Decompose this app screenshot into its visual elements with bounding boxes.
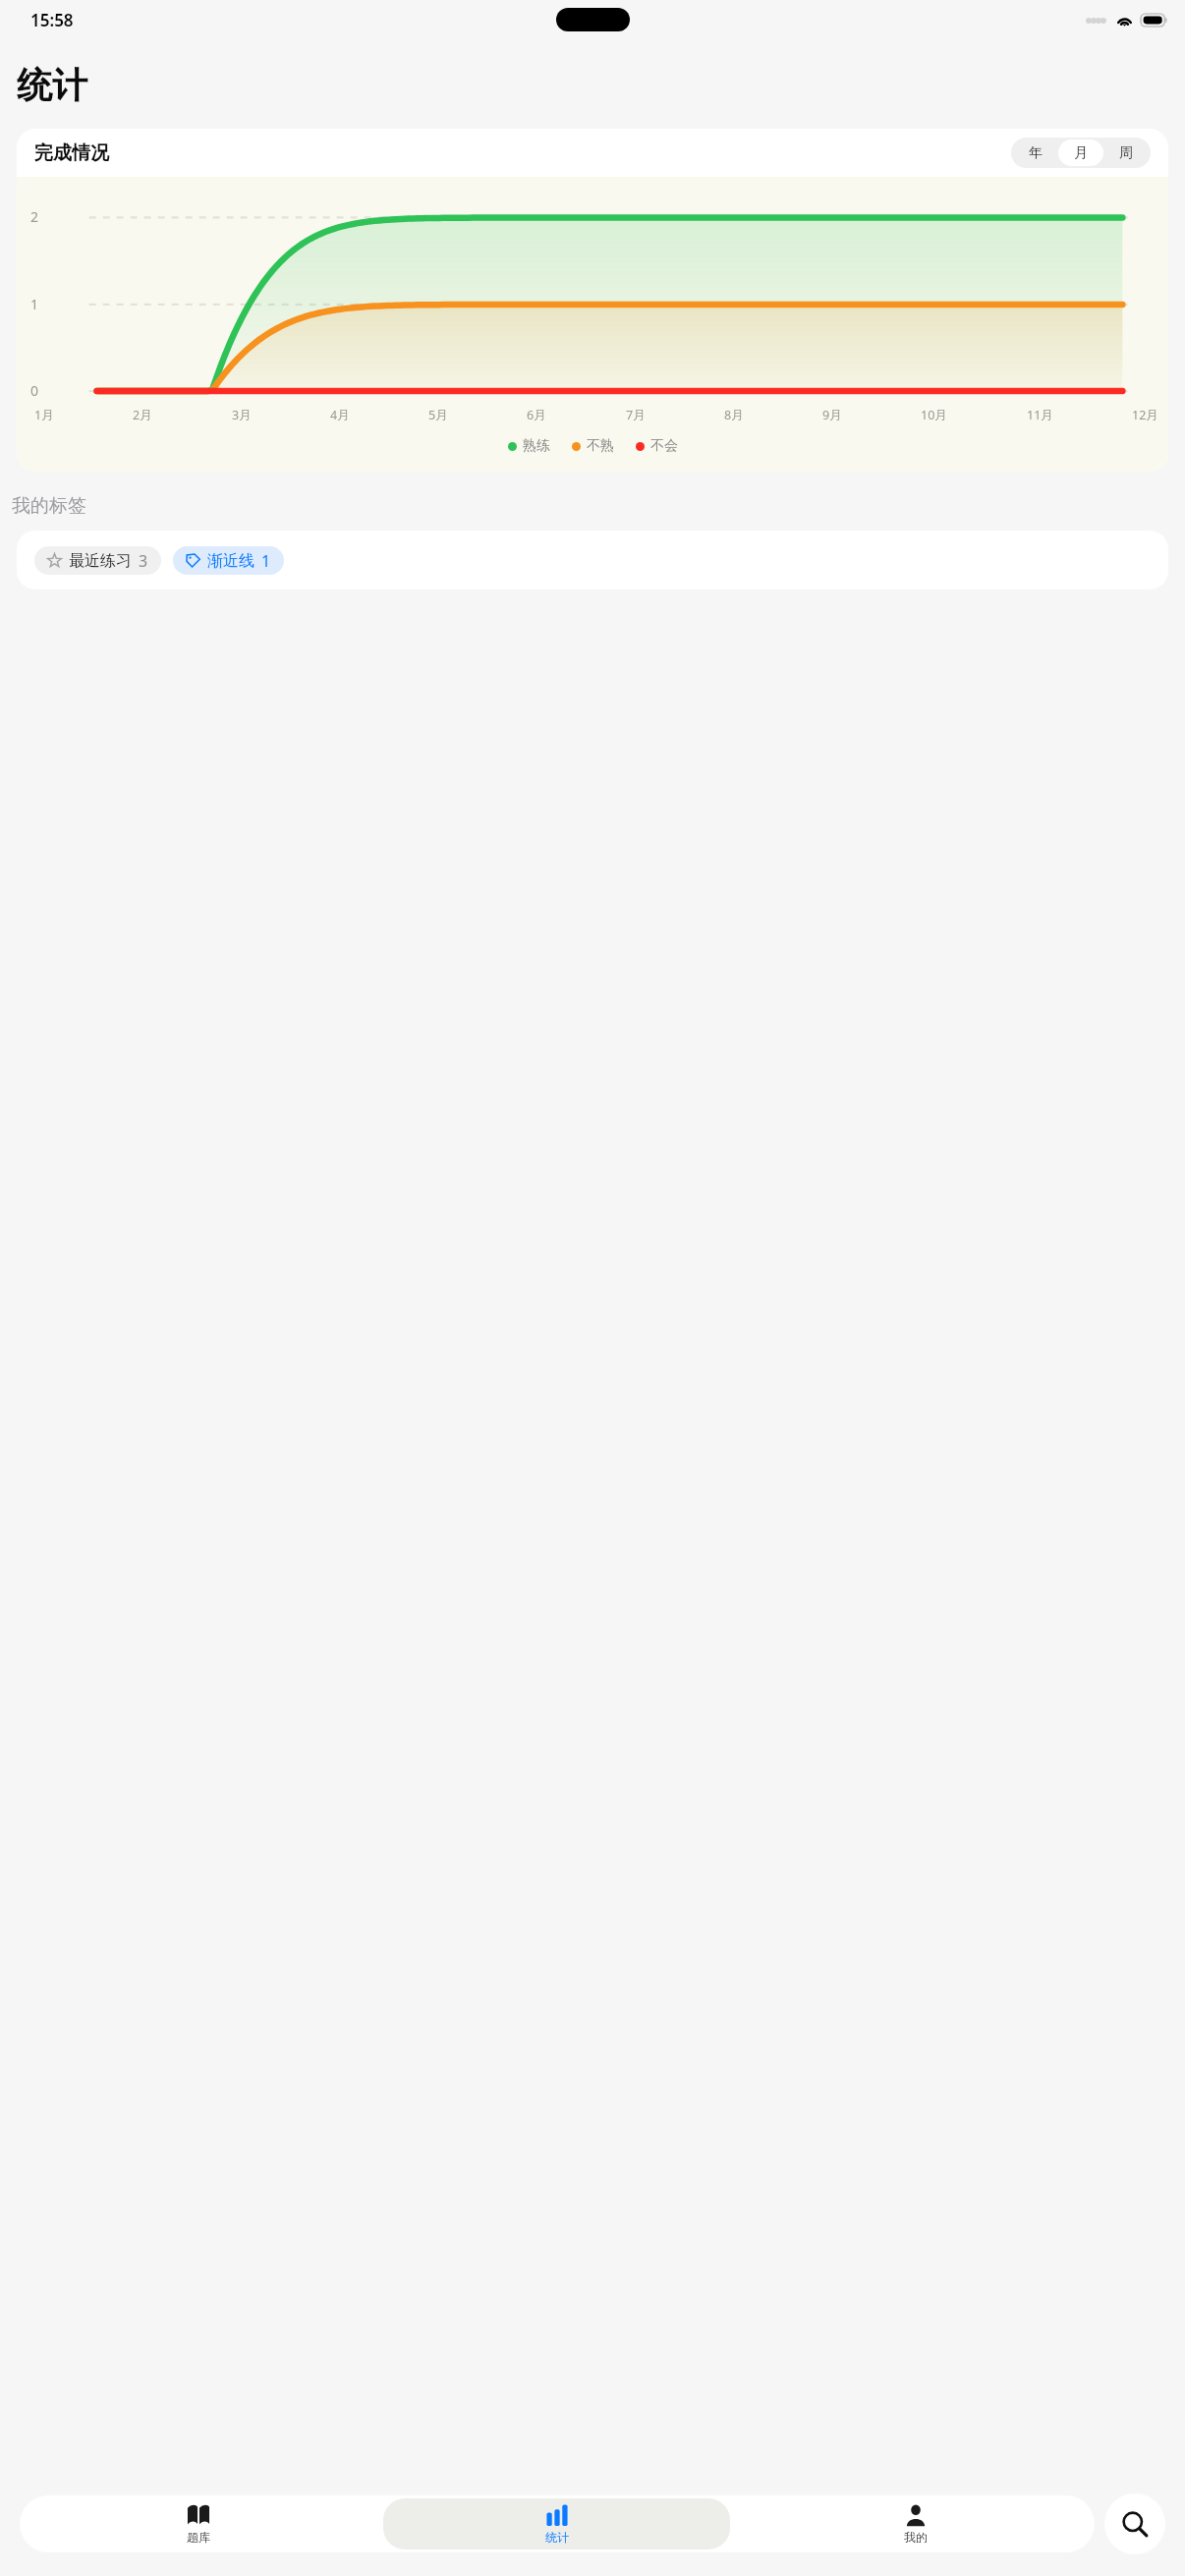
staticText: 9月 bbox=[822, 407, 842, 423]
staticText: 5月 bbox=[428, 407, 448, 423]
button[interactable]: 题库 bbox=[26, 2498, 371, 2549]
staticText: 年 bbox=[1029, 144, 1043, 162]
staticText: 月 bbox=[1074, 144, 1088, 162]
button[interactable]: Search bbox=[1104, 2493, 1165, 2554]
staticText: 0 bbox=[30, 381, 39, 400]
staticText: 6月 bbox=[527, 407, 546, 423]
staticText: 3月 bbox=[232, 407, 252, 423]
staticText: 1 bbox=[30, 295, 39, 313]
staticText: 我的 bbox=[904, 2530, 928, 2545]
button[interactable]: 月 bbox=[1058, 140, 1103, 166]
button[interactable]: 渐近线 bbox=[173, 546, 284, 575]
staticText: 4月 bbox=[330, 407, 350, 423]
staticText: 统计 bbox=[17, 63, 87, 107]
staticText: 不会 bbox=[650, 437, 678, 455]
staticText: 2月 bbox=[133, 407, 152, 423]
staticText: 题库 bbox=[187, 2530, 210, 2545]
staticText: 8月 bbox=[724, 407, 744, 423]
staticText: 11月 bbox=[1027, 407, 1053, 423]
button[interactable]: 最近练习 bbox=[34, 546, 161, 575]
button[interactable]: 我的 bbox=[742, 2498, 1089, 2549]
staticText: 周 bbox=[1119, 144, 1133, 162]
staticText: 3 bbox=[139, 550, 148, 572]
staticText: 2 bbox=[30, 207, 39, 226]
button[interactable]: 统计 bbox=[383, 2498, 730, 2549]
staticText: 熟练 bbox=[523, 437, 550, 455]
staticText: 15:58 bbox=[30, 9, 74, 31]
staticText: 12月 bbox=[1132, 407, 1158, 423]
staticText: 渐近线 bbox=[207, 551, 254, 571]
staticText: 统计 bbox=[545, 2530, 569, 2545]
staticText: 1 bbox=[261, 550, 271, 572]
staticText: 我的标签 bbox=[12, 494, 86, 518]
button[interactable]: 年 bbox=[1013, 140, 1058, 166]
staticText: 不熟 bbox=[587, 437, 614, 455]
staticText: 10月 bbox=[921, 407, 947, 423]
staticText: 最近练习 bbox=[69, 551, 132, 571]
staticText: 完成情况 bbox=[34, 141, 109, 165]
button[interactable]: 周 bbox=[1103, 140, 1149, 166]
staticText: 7月 bbox=[626, 407, 646, 423]
staticText: 1月 bbox=[34, 407, 54, 423]
